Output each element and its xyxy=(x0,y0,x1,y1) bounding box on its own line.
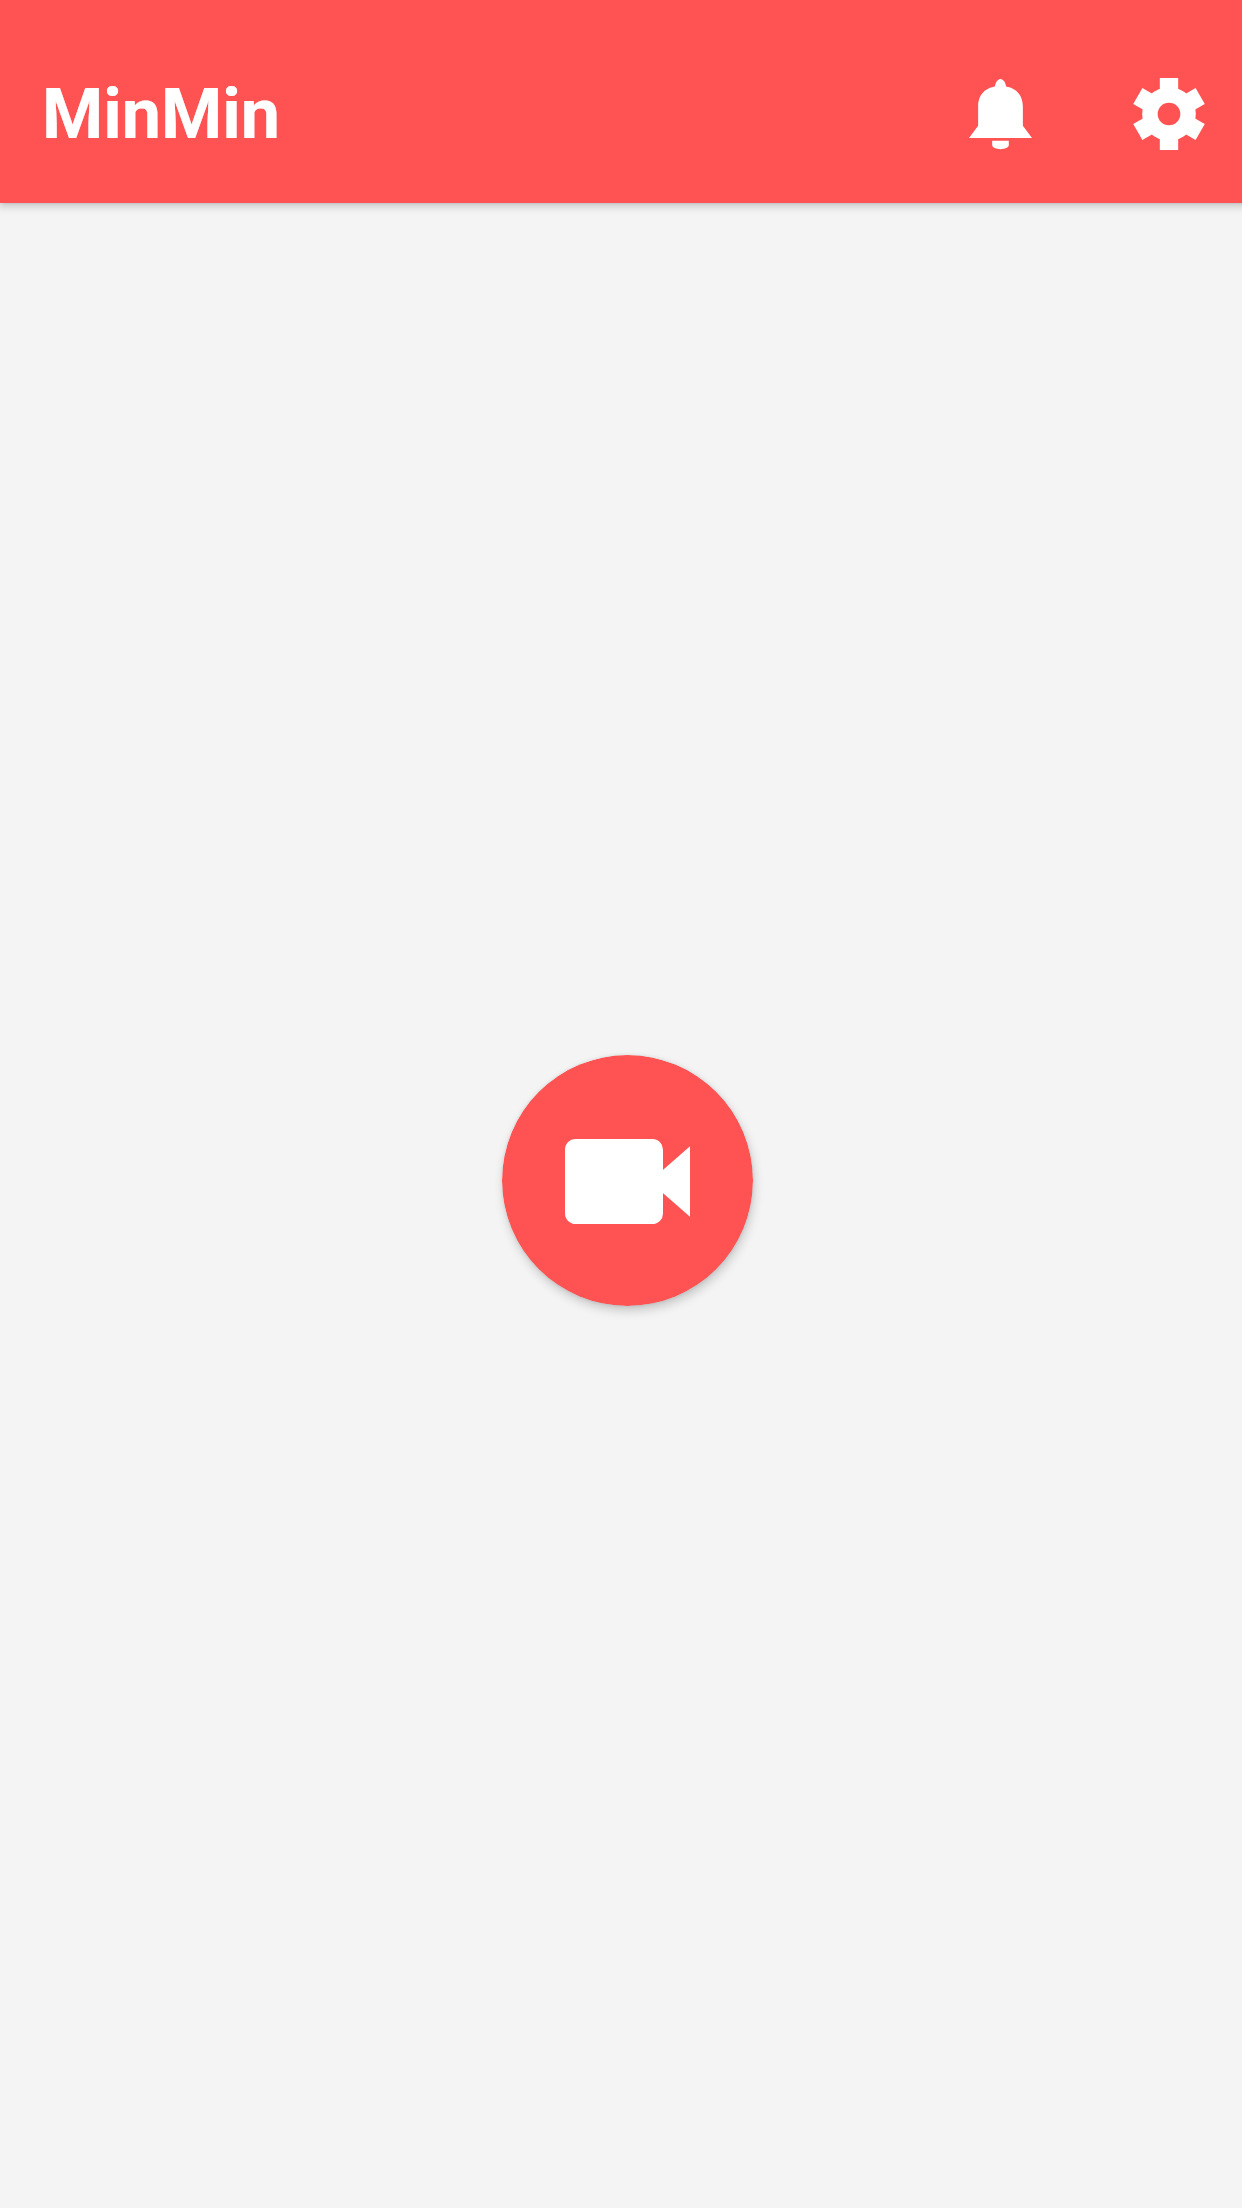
staticText: MinMin xyxy=(42,73,281,155)
button[interactable]: Notifications xyxy=(929,42,1072,185)
button[interactable]: Settings xyxy=(1097,42,1240,185)
button[interactable]: Start video recording xyxy=(502,1055,753,1306)
